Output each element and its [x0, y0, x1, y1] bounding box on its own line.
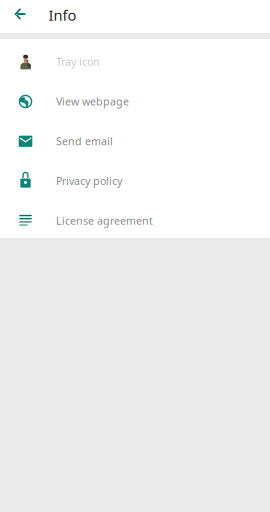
staticText: Info: [48, 5, 76, 25]
button[interactable]: License agreement: [0, 198, 270, 238]
button[interactable]: Send email: [0, 119, 270, 158]
button[interactable]: Privacy policy: [0, 158, 270, 198]
button[interactable]: View webpage: [0, 79, 270, 119]
staticText: Tray icon: [56, 54, 100, 69]
staticText: View webpage: [56, 94, 129, 108]
staticText: Send email: [56, 134, 113, 148]
staticText: License agreement: [56, 214, 153, 228]
button[interactable]: Back: [6, 0, 34, 33]
staticText: Privacy policy: [56, 174, 122, 188]
button[interactable]: Tray icon: [0, 39, 270, 79]
